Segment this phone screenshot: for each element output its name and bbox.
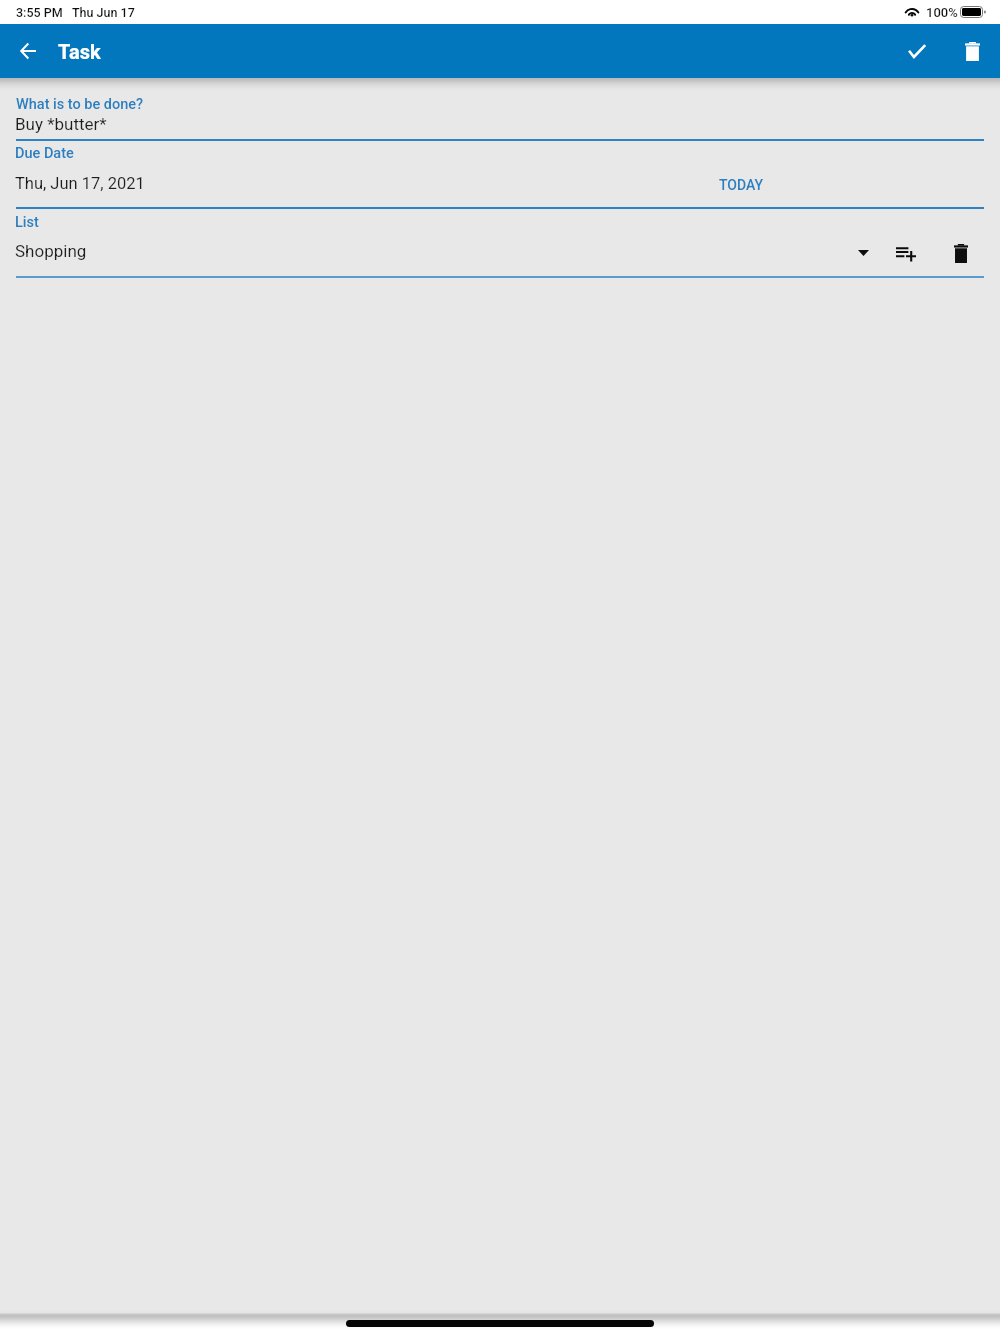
- button[interactable]: [0, 142, 690, 207]
- button[interactable]: [0, 210, 840, 276]
- button[interactable]: Home: [346, 1320, 654, 1327]
- staticText: Task: [58, 40, 101, 63]
- staticText: Shopping: [15, 241, 87, 261]
- button[interactable]: Back: [8, 31, 48, 71]
- button[interactable]: Choose list: [845, 235, 881, 271]
- staticText: Thu Jun 17: [72, 5, 135, 20]
- staticText: 100%: [926, 5, 958, 20]
- button[interactable]: [0, 91, 1000, 141]
- staticText: Thu, Jun 17, 2021: [15, 174, 145, 193]
- staticText: 3:55 PM: [16, 5, 63, 20]
- staticText: Due Date: [15, 145, 74, 162]
- staticText: TODAY: [719, 177, 764, 193]
- staticText: List: [15, 214, 39, 231]
- staticText: What is to be done?: [16, 96, 144, 113]
- button[interactable]: New list: [888, 236, 924, 272]
- button[interactable]: Delete task: [952, 31, 992, 71]
- button[interactable]: Delete list: [943, 235, 979, 271]
- button[interactable]: Save task: [897, 31, 937, 71]
- staticText: Buy *butter*: [15, 114, 107, 134]
- button[interactable]: TODAY: [703, 171, 780, 199]
